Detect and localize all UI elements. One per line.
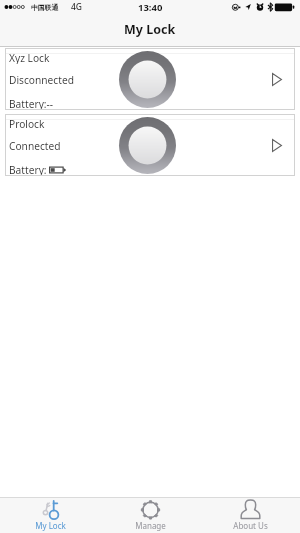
staticText: About Us [233, 520, 268, 531]
button[interactable]: My Lock [0, 498, 100, 533]
staticText: Xyz Lock [9, 51, 50, 64]
staticText: Battery:-- [9, 97, 54, 110]
button[interactable]: Manage [100, 498, 200, 533]
button[interactable]: Connect lock [267, 135, 287, 155]
staticText: Connected [9, 139, 61, 152]
staticText: My Lock [35, 520, 66, 531]
staticText: Prolock [9, 117, 45, 130]
button[interactable]: About Us [200, 498, 300, 533]
staticText: Manage [135, 520, 166, 531]
staticText: 中国联通 [31, 3, 59, 12]
staticText: Disconnected [9, 73, 74, 86]
staticText: My Lock [124, 21, 176, 38]
button[interactable]: Prolock [5, 114, 295, 176]
button[interactable]: Connect lock [267, 69, 287, 89]
staticText: Battery: [9, 163, 47, 176]
staticText: 13:40 [138, 1, 163, 14]
button[interactable]: Xyz Lock [5, 48, 295, 110]
staticText: 4G [71, 1, 83, 13]
